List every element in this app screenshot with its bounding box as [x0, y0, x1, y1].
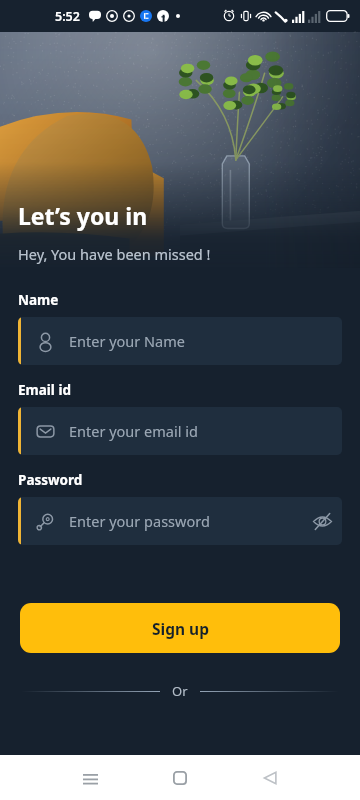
staticText: Or [172, 682, 188, 700]
staticText: Email id [18, 381, 71, 399]
staticText: Enter your Name [69, 331, 185, 351]
button[interactable]: Back [253, 761, 287, 795]
button[interactable]: Enter your Name [18, 317, 342, 365]
staticText: 5:52 [55, 8, 80, 25]
staticText: Password [18, 471, 83, 489]
staticText: Sign up [152, 618, 209, 639]
staticText: Enter your email id [69, 421, 198, 441]
button[interactable]: Sign up [20, 603, 340, 653]
staticText: Enter your password [69, 511, 210, 531]
button[interactable]: Home [163, 761, 197, 795]
staticText: Let’s you in [18, 200, 148, 231]
button[interactable]: Enter your email id [18, 407, 342, 455]
button[interactable]: Enter your password [18, 497, 342, 545]
button[interactable]: Show password [302, 501, 342, 541]
button[interactable]: Recent apps [73, 761, 107, 795]
staticText: Name [18, 291, 59, 309]
staticText: Hey, You have been missed ! [18, 244, 211, 264]
